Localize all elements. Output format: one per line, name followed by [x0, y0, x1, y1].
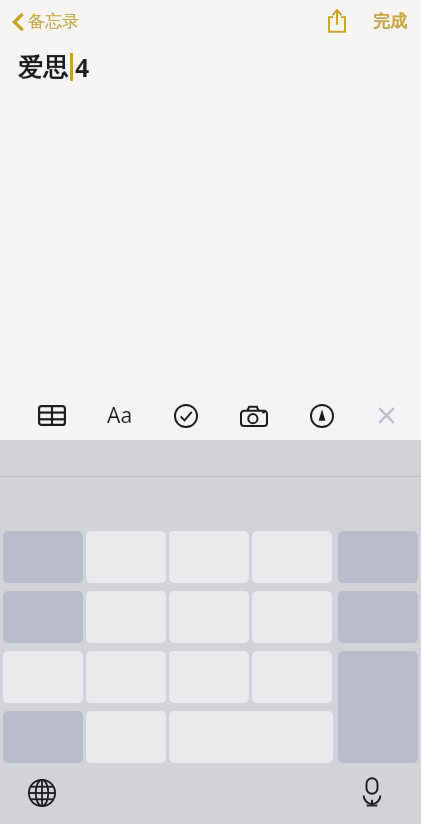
staticText: 爱思 [18, 52, 68, 83]
button[interactable]: Table [34, 399, 70, 432]
staticText: 完成 [373, 11, 407, 32]
button[interactable]: Close keyboard [372, 399, 401, 432]
staticText: 4 [75, 50, 90, 84]
button[interactable]: Share [321, 3, 353, 39]
button[interactable]: 完成 [369, 7, 411, 36]
staticText: Aa [107, 401, 133, 430]
button[interactable]: Text format [103, 395, 137, 436]
button[interactable]: 备忘录 [8, 7, 83, 36]
button[interactable]: Camera [236, 399, 272, 433]
button[interactable]: Switch keyboard [22, 773, 62, 813]
staticText: 备忘录 [28, 11, 79, 32]
button[interactable]: Checklist [170, 398, 202, 434]
button[interactable]: Dictation [355, 771, 389, 813]
button[interactable]: Markup [306, 398, 338, 434]
